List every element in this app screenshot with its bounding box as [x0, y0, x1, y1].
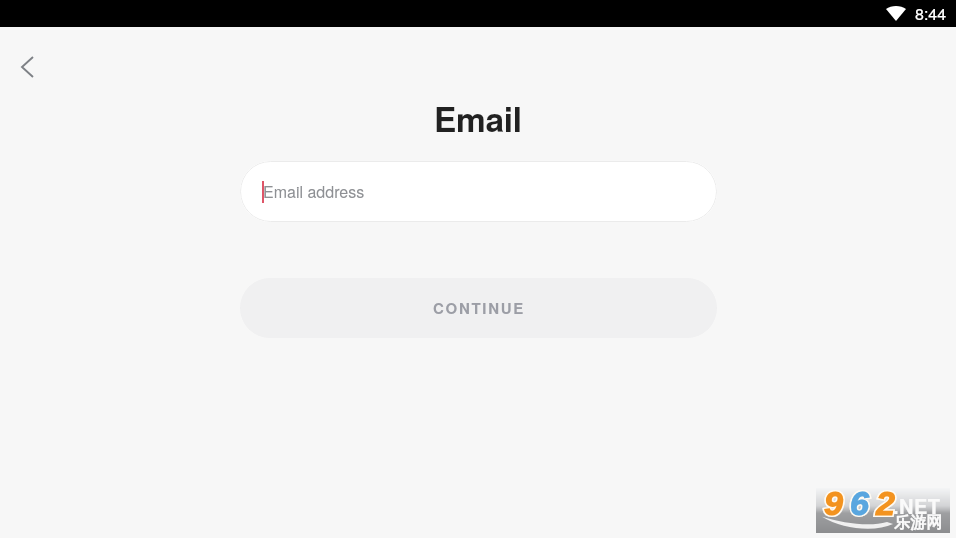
staticText: 9	[824, 484, 850, 522]
staticText: 9	[824, 484, 850, 522]
staticText: 6	[850, 484, 876, 522]
button[interactable]: Email address	[240, 161, 717, 222]
button[interactable]: Back	[7, 47, 47, 87]
staticText: Email	[434, 94, 522, 142]
staticText: CONTINUE	[433, 297, 525, 318]
staticText: 6	[850, 484, 876, 522]
button[interactable]: CONTINUE	[240, 278, 717, 338]
staticText: 乐游网	[894, 513, 942, 533]
staticText: 2	[876, 484, 902, 522]
staticText: .NET	[893, 491, 941, 520]
staticText: 8:44	[915, 2, 947, 25]
staticText: 2	[876, 484, 902, 522]
staticText: Email address	[263, 180, 365, 203]
